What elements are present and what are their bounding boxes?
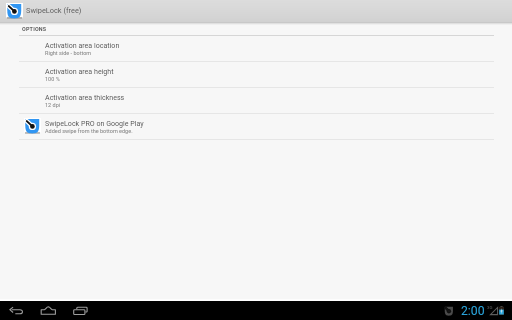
staticText: OPTIONS: [22, 26, 47, 32]
button[interactable]: System status: 2:00, battery charging: [0, 301, 512, 320]
button[interactable]: Recent apps: [72, 301, 89, 320]
button[interactable]: Home: [40, 301, 57, 320]
button[interactable]: SwipeLock PRO on Google Play: [0, 114, 512, 140]
staticText: Activation area thickness: [45, 93, 125, 101]
staticText: Right side - bottom: [45, 50, 92, 56]
staticText: 100 %: [45, 76, 60, 82]
button[interactable]: Activation area thickness: [0, 88, 512, 114]
button[interactable]: Activation area location: [0, 36, 512, 62]
staticText: SwipeLock PRO on Google Play: [45, 119, 144, 127]
button[interactable]: Activation area height: [0, 62, 512, 88]
staticText: 12 dpi: [45, 102, 61, 108]
staticText: Added swipe from the bottom edge.: [45, 128, 133, 134]
button[interactable]: SwipeLock (free), up: [0, 0, 512, 22]
staticText: 3G: [487, 305, 493, 310]
staticText: SwipeLock (free): [26, 6, 82, 15]
staticText: Activation area location: [45, 41, 120, 49]
button[interactable]: Back: [8, 301, 25, 320]
staticText: Activation area height: [45, 67, 114, 75]
staticText: 2:00: [461, 304, 485, 318]
